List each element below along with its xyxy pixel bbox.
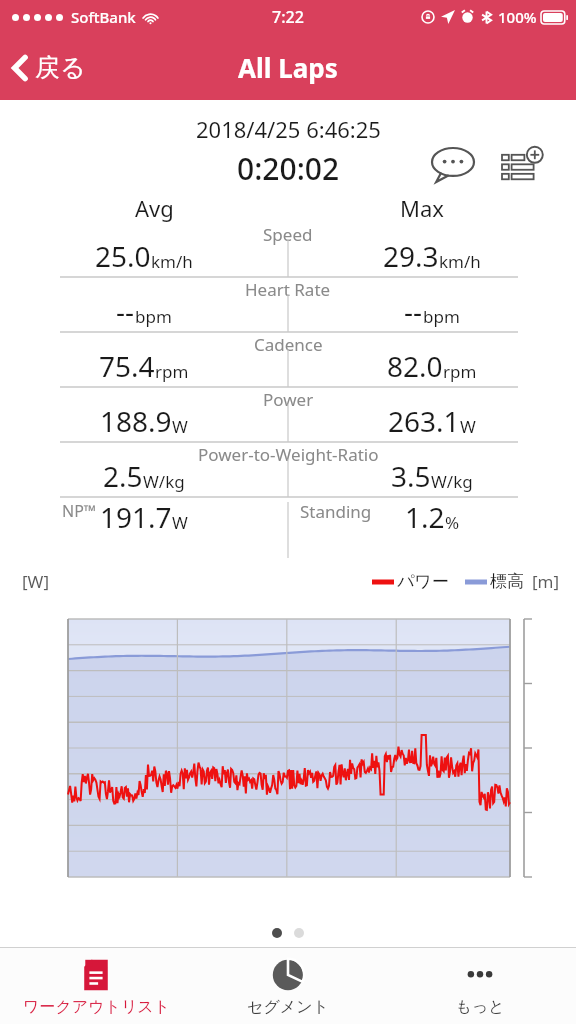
- staticText: 標高: [490, 571, 524, 592]
- staticText: パワー: [397, 571, 449, 592]
- staticText: 75.4: [99, 347, 155, 385]
- staticText: もっと: [455, 997, 505, 1017]
- staticText: 2.5: [103, 457, 143, 495]
- staticText: 263.1: [388, 402, 460, 440]
- button[interactable]: もっと: [384, 948, 576, 1024]
- staticText: W: [460, 415, 476, 438]
- button[interactable]: Add to list: [496, 142, 548, 188]
- staticText: bpm: [423, 305, 460, 328]
- staticText: Avg: [135, 193, 174, 223]
- staticText: 29.3: [383, 237, 439, 275]
- button[interactable]: ワークアウトリスト: [0, 948, 192, 1024]
- button[interactable]: Comments: [426, 142, 480, 188]
- button[interactable]: 戻る: [0, 46, 100, 89]
- staticText: W/kg: [431, 470, 473, 493]
- staticText: Standing: [300, 500, 372, 523]
- staticText: Cadence: [254, 333, 323, 356]
- staticText: Speed: [263, 223, 313, 246]
- staticText: --: [404, 292, 423, 330]
- staticText: 1.2: [405, 498, 445, 536]
- staticText: 191.7: [100, 498, 172, 536]
- button[interactable]: セグメント: [192, 948, 384, 1024]
- staticText: ワークアウトリスト: [23, 997, 170, 1017]
- staticText: セグメント: [247, 997, 329, 1017]
- staticText: Max: [400, 193, 444, 223]
- staticText: rpm: [443, 360, 477, 383]
- staticText: Heart Rate: [245, 278, 331, 301]
- staticText: km/h: [151, 250, 193, 273]
- staticText: 7:22: [272, 6, 304, 28]
- staticText: bpm: [135, 305, 172, 328]
- staticText: [m]: [532, 570, 560, 593]
- staticText: All Laps: [238, 50, 338, 85]
- staticText: SoftBank: [71, 7, 136, 27]
- staticText: 戻る: [35, 52, 86, 83]
- staticText: [W]: [22, 570, 49, 593]
- staticText: 25.0: [95, 237, 151, 275]
- staticText: 100%: [498, 7, 537, 27]
- staticText: 3.5: [391, 457, 431, 495]
- staticText: W: [172, 511, 188, 534]
- staticText: Power-to-Weight-Ratio: [198, 443, 379, 466]
- staticText: W/kg: [143, 470, 185, 493]
- staticText: %: [445, 511, 460, 534]
- staticText: km/h: [439, 250, 481, 273]
- staticText: --: [116, 292, 135, 330]
- staticText: 2018/4/25 6:46:25: [196, 114, 381, 144]
- staticText: rpm: [155, 360, 189, 383]
- staticText: 188.9: [100, 402, 172, 440]
- staticText: 82.0: [387, 347, 443, 385]
- staticText: NP™: [62, 500, 97, 522]
- staticText: Power: [263, 388, 314, 411]
- staticText: W: [172, 415, 188, 438]
- staticText: 0:20:02: [237, 148, 340, 189]
